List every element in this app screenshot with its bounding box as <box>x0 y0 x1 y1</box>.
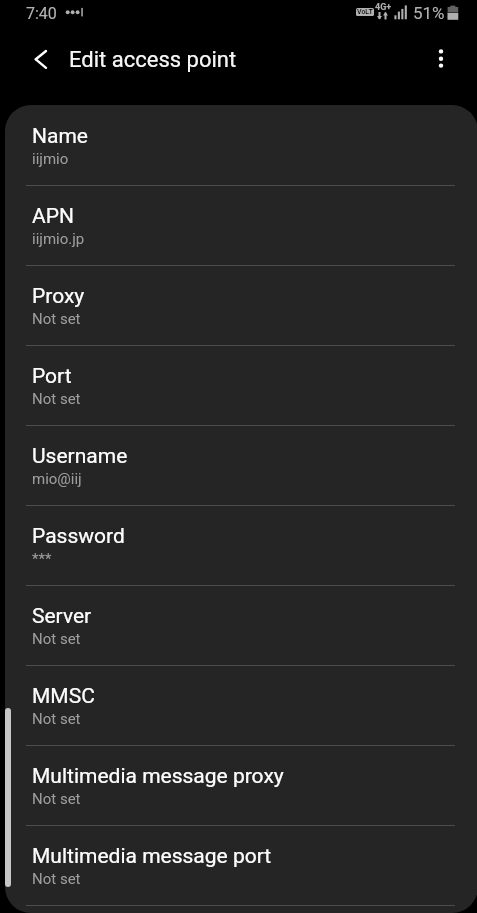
button[interactable]: Username <box>5 425 477 505</box>
staticText: Multimedia message proxy <box>32 764 284 789</box>
button[interactable]: Password <box>5 505 477 585</box>
button[interactable]: Navigate up <box>19 36 63 80</box>
button[interactable]: APN <box>5 185 477 265</box>
staticText: mio@iij <box>32 470 82 488</box>
staticText: Username <box>32 444 128 469</box>
button[interactable]: Name <box>5 105 477 185</box>
staticText: iijmio <box>32 150 69 168</box>
staticText: Proxy <box>32 284 85 309</box>
staticText: VoLTE <box>357 8 374 16</box>
staticText: Not set <box>32 870 81 888</box>
staticText: APN <box>32 204 74 229</box>
staticText: *** <box>32 550 52 568</box>
staticText: Not set <box>32 630 81 648</box>
staticText: Edit access point <box>69 47 237 73</box>
staticText: Not set <box>32 390 81 408</box>
staticText: Not set <box>32 790 81 808</box>
button[interactable]: Multimedia message proxy <box>5 745 477 825</box>
button[interactable]: Multimedia message port <box>5 825 477 905</box>
staticText: Port <box>32 364 72 389</box>
button[interactable]: MMSC <box>5 665 477 745</box>
button[interactable]: Proxy <box>5 265 477 345</box>
button[interactable]: Server <box>5 585 477 665</box>
staticText: MMSC <box>32 684 95 709</box>
staticText: Not set <box>32 310 81 328</box>
staticText: Not set <box>32 710 81 728</box>
button[interactable]: Port <box>5 345 477 425</box>
staticText: Server <box>32 604 92 629</box>
staticText: 7:40 <box>26 4 57 23</box>
button[interactable]: More options <box>419 36 463 80</box>
staticText: 4G+ <box>375 2 392 13</box>
staticText: 51% <box>413 3 445 23</box>
staticText: Multimedia message port <box>32 844 272 869</box>
staticText: iijmio.jp <box>32 230 85 248</box>
staticText: Password <box>32 524 125 549</box>
staticText: Name <box>32 124 88 149</box>
